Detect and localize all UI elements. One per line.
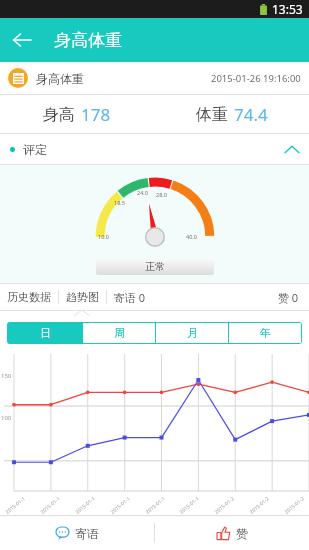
button[interactable]: 寄语 0 [107,284,153,310]
staticText: 月 [187,326,198,340]
button[interactable]: 身高体重 [0,62,309,94]
staticText: 74.4 [234,103,268,126]
staticText: 2015-01-26 19:16:00 [211,72,301,85]
staticText: 年 [260,326,271,340]
staticText: 历史数据 [7,290,51,304]
button[interactable]: 历史数据 [0,284,58,310]
button[interactable]: 周 [83,323,155,343]
button[interactable]: 寄语 [0,516,154,550]
staticText: 2015-01-26 [248,495,276,521]
button[interactable]: Back [0,18,44,62]
staticText: 150 [1,372,12,380]
staticText: 评定 [23,142,47,157]
staticText: 周 [114,326,125,340]
staticText: 2015-01-20 [213,495,241,521]
button[interactable]: 评定 [0,134,309,164]
button[interactable]: 赞 0 [278,284,309,310]
staticText: 寄语 0 [114,290,146,305]
button[interactable]: 趋势图 [59,284,106,310]
button[interactable]: 年 [229,323,301,343]
staticText: 13:53 [272,1,303,17]
button[interactable]: 正常 [96,258,214,275]
button[interactable]: 赞 [155,516,309,550]
staticText: 2015-01-17 [109,495,137,521]
staticText: 赞 0 [278,290,299,305]
staticText: 身高体重 [36,71,84,86]
staticText: 2015-01-26 [283,495,309,521]
staticText: 2015-01-14 [39,495,67,521]
staticText: 体重 [196,105,228,125]
staticText: 2015-01-19 [178,495,206,521]
staticText: 18.5 [114,199,125,206]
staticText: 正常 [145,260,165,273]
staticText: 2015-01-15 [74,495,102,521]
staticText: 趋势图 [66,290,99,304]
staticText: 28.0 [156,191,167,198]
staticText: 10.0 [98,233,109,240]
button[interactable]: 日 [8,323,82,343]
button[interactable]: 月 [156,323,228,343]
staticText: 2015-01-18 [144,495,172,521]
staticText: 24.0 [137,189,148,196]
staticText: 日 [40,326,51,340]
staticText: 2015-01-13 [4,495,32,521]
staticText: 寄语 [75,526,99,541]
staticText: 100 [1,414,12,422]
staticText: 40.0 [186,233,197,240]
staticText: 身高 [43,105,75,125]
staticText: 178 [81,103,111,126]
staticText: 身高体重 [54,30,122,51]
staticText: 赞 [236,526,248,541]
